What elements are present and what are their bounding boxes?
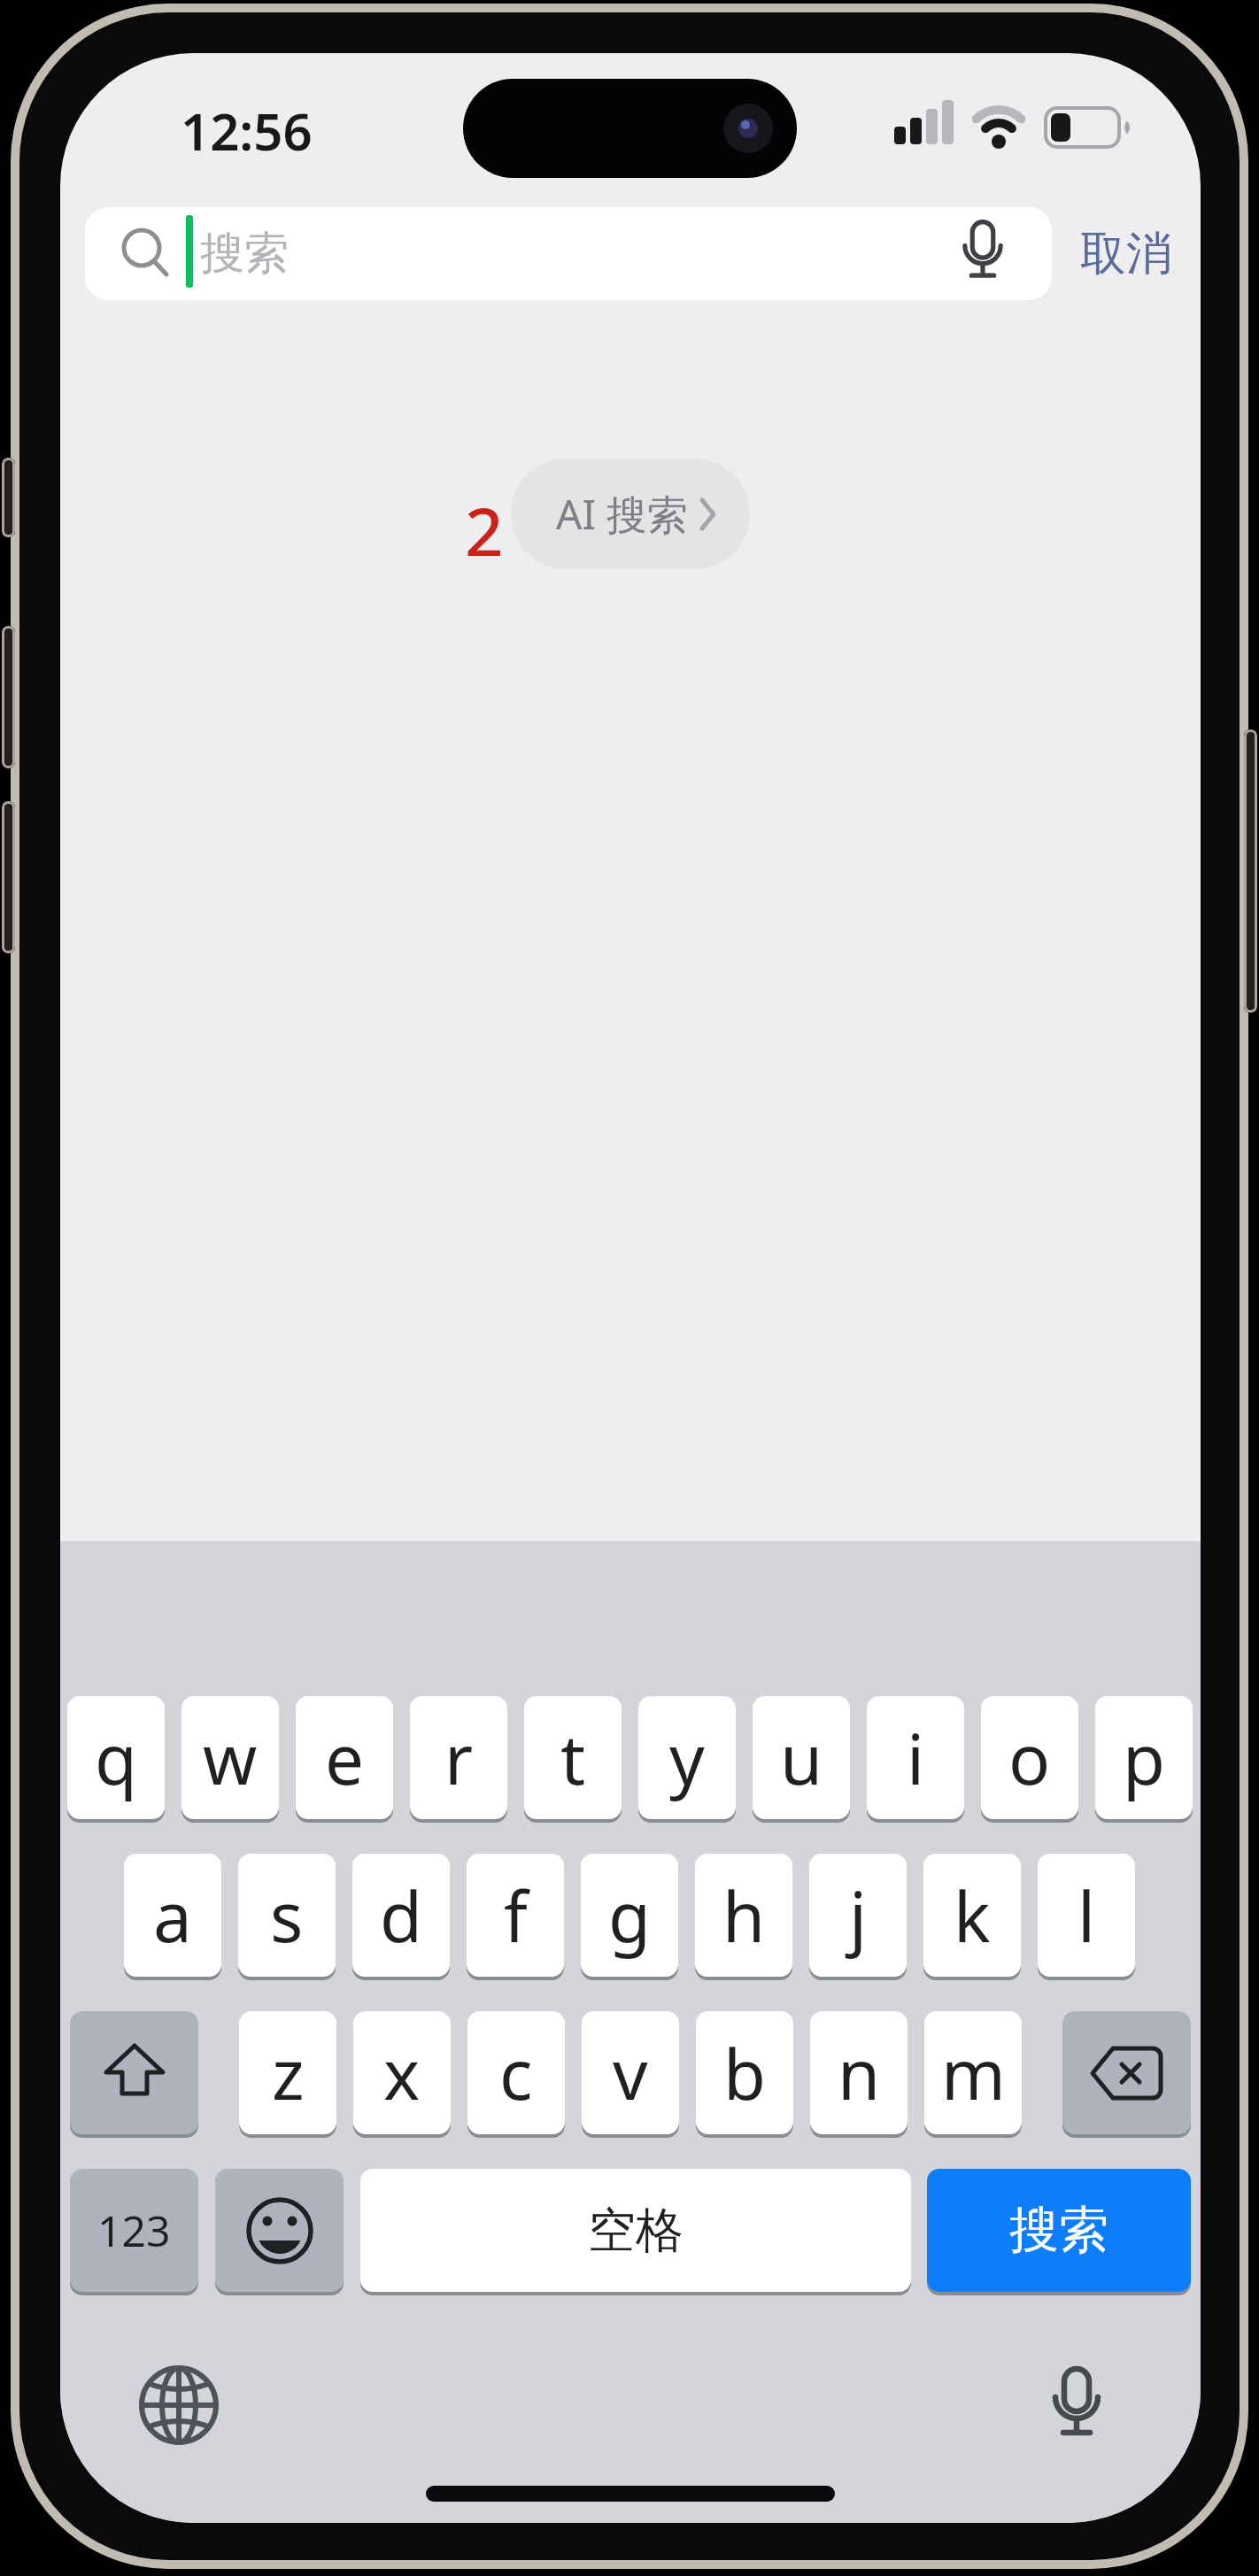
button[interactable]: 取消 (1051, 207, 1201, 300)
button[interactable]: x (353, 2011, 451, 2134)
staticText: d (380, 1869, 422, 1963)
button[interactable]: r (410, 1696, 507, 1819)
button[interactable] (1062, 2011, 1191, 2134)
staticText: v (613, 2026, 648, 2120)
button[interactable]: a (124, 1854, 221, 1977)
staticText: t (560, 1711, 586, 1805)
staticText: b (723, 2026, 766, 2120)
button[interactable]: 123 (70, 2169, 198, 2292)
staticText: u (780, 1711, 823, 1805)
button[interactable] (1032, 2362, 1121, 2450)
staticText: y (669, 1711, 705, 1805)
staticText: 搜索 (200, 226, 289, 282)
button[interactable]: w (182, 1696, 279, 1819)
staticText: w (203, 1711, 258, 1805)
staticText: o (1008, 1711, 1051, 1805)
staticText: h (722, 1869, 766, 1963)
button[interactable]: 搜索 (927, 2169, 1191, 2292)
button[interactable] (135, 2361, 223, 2449)
button[interactable]: t (524, 1696, 622, 1819)
staticText: r (444, 1711, 474, 1805)
button[interactable]: e (296, 1696, 393, 1819)
staticText: 123 (97, 2202, 171, 2259)
staticText: 空格 (588, 2201, 684, 2261)
button[interactable]: s (238, 1854, 336, 1977)
button[interactable] (215, 2169, 344, 2292)
staticText: l (1077, 1869, 1096, 1963)
button[interactable]: l (1038, 1854, 1135, 1977)
staticText: AI 搜索 (556, 486, 688, 542)
staticText: m (941, 2026, 1006, 2120)
staticText: i (907, 1711, 925, 1805)
staticText: p (1123, 1711, 1165, 1805)
staticText: n (838, 2026, 881, 2120)
button[interactable]: h (695, 1854, 792, 1977)
button[interactable]: AI 搜索 (511, 459, 750, 569)
button[interactable]: p (1095, 1696, 1193, 1819)
staticText: e (325, 1711, 364, 1805)
button[interactable]: o (981, 1696, 1078, 1819)
staticText: s (270, 1869, 304, 1963)
button[interactable]: g (581, 1854, 678, 1977)
button[interactable] (70, 2011, 198, 2134)
staticText: 取消 (1080, 225, 1172, 283)
button[interactable]: y (638, 1696, 736, 1819)
button[interactable]: j (809, 1854, 907, 1977)
staticText: j (849, 1869, 868, 1963)
staticText: a (153, 1869, 192, 1963)
staticText: c (499, 2026, 533, 2120)
staticText: 搜索 (1009, 2199, 1108, 2262)
button[interactable]: b (696, 2011, 793, 2134)
staticText: g (608, 1869, 651, 1963)
staticText: q (95, 1711, 137, 1805)
button[interactable]: n (810, 2011, 908, 2134)
button[interactable]: f (467, 1854, 564, 1977)
button[interactable]: 空格 (360, 2169, 911, 2292)
staticText: x (383, 2026, 421, 2120)
button[interactable]: c (467, 2011, 565, 2134)
button[interactable]: 搜索 (85, 207, 1052, 300)
staticText: 2 (465, 485, 504, 556)
button[interactable]: v (582, 2011, 679, 2134)
button[interactable] (946, 216, 1020, 290)
staticText: z (272, 2026, 305, 2120)
staticText: f (504, 1869, 528, 1963)
button[interactable]: u (753, 1696, 850, 1819)
button[interactable]: z (239, 2011, 336, 2134)
button[interactable]: k (923, 1854, 1021, 1977)
staticText: k (954, 1869, 991, 1963)
button[interactable]: d (352, 1854, 450, 1977)
button[interactable]: i (867, 1696, 964, 1819)
button[interactable]: m (924, 2011, 1022, 2134)
staticText: 12:56 (181, 96, 313, 158)
button[interactable]: q (67, 1696, 165, 1819)
